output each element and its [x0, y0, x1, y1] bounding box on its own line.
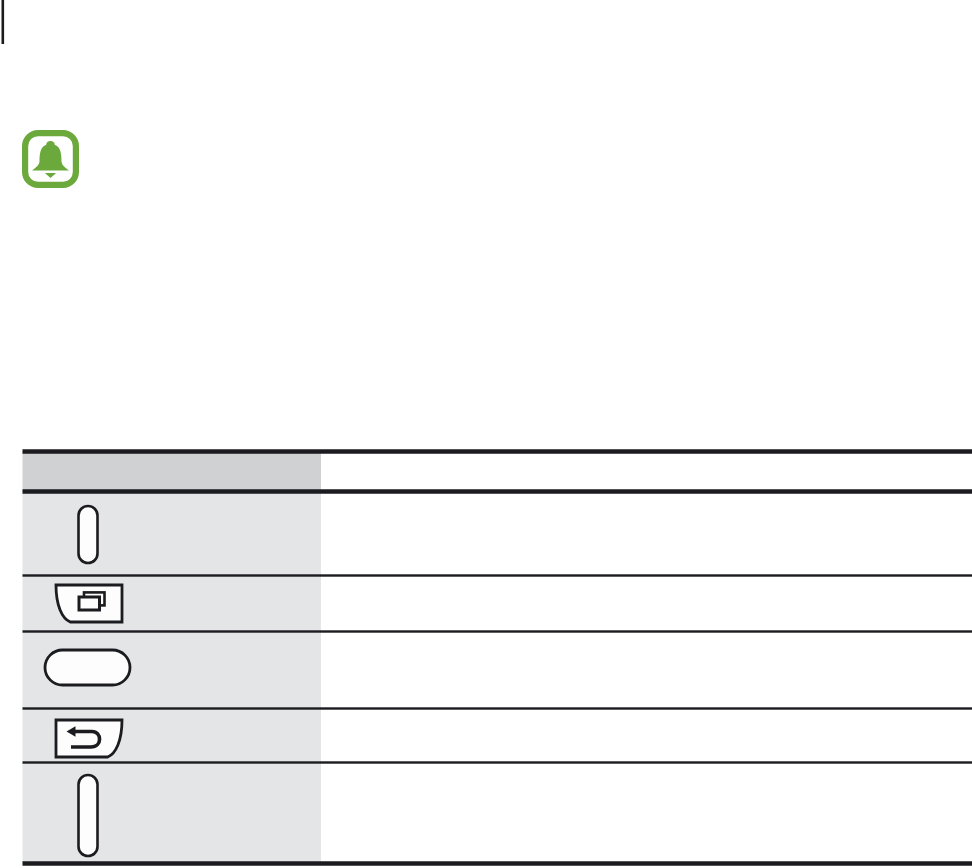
button[interactable]: Device keys reference page [0, 0, 972, 868]
